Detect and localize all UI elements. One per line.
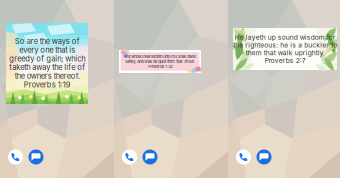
button[interactable]: Messages [256,149,271,164]
button[interactable]: Messages [142,149,157,164]
staticText: So are the ways of every one that is gre… [9,37,85,89]
button[interactable]: Phone [122,149,137,164]
button[interactable]: Phone [8,149,23,164]
button[interactable]: Phone [236,149,251,164]
staticText: But whoso hearkeneth unto me shall dwell… [124,54,196,69]
staticText: He layeth up sound wisdom for the righte… [233,33,337,65]
button[interactable]: Messages [28,149,43,164]
